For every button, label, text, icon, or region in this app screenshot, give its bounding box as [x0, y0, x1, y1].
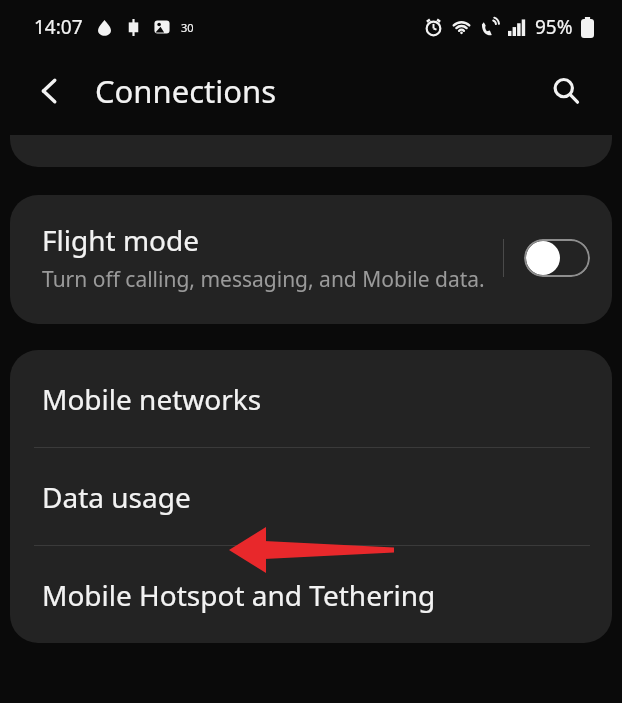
staticText: Mobile Hotspot and Tethering — [42, 576, 436, 614]
staticText: Turn off calling, messaging, and Mobile … — [42, 265, 485, 294]
staticText: Flight mode — [42, 221, 200, 259]
staticText: 30 — [181, 20, 194, 35]
staticText: Data usage — [42, 478, 191, 516]
button[interactable]: Flight mode — [10, 195, 612, 324]
button[interactable]: Mobile Hotspot and Tethering — [10, 546, 612, 643]
button[interactable]: Flight mode toggle — [524, 239, 590, 277]
button[interactable]: Search — [542, 67, 590, 115]
button[interactable] — [10, 135, 612, 167]
staticText: Mobile networks — [42, 380, 262, 418]
staticText: 14:07 — [34, 14, 83, 40]
staticText: 95% — [535, 14, 573, 40]
button[interactable]: Mobile networks — [10, 350, 612, 447]
button[interactable]: Back — [26, 67, 74, 115]
button[interactable]: Data usage — [10, 448, 612, 545]
staticText: Connections — [95, 70, 276, 112]
